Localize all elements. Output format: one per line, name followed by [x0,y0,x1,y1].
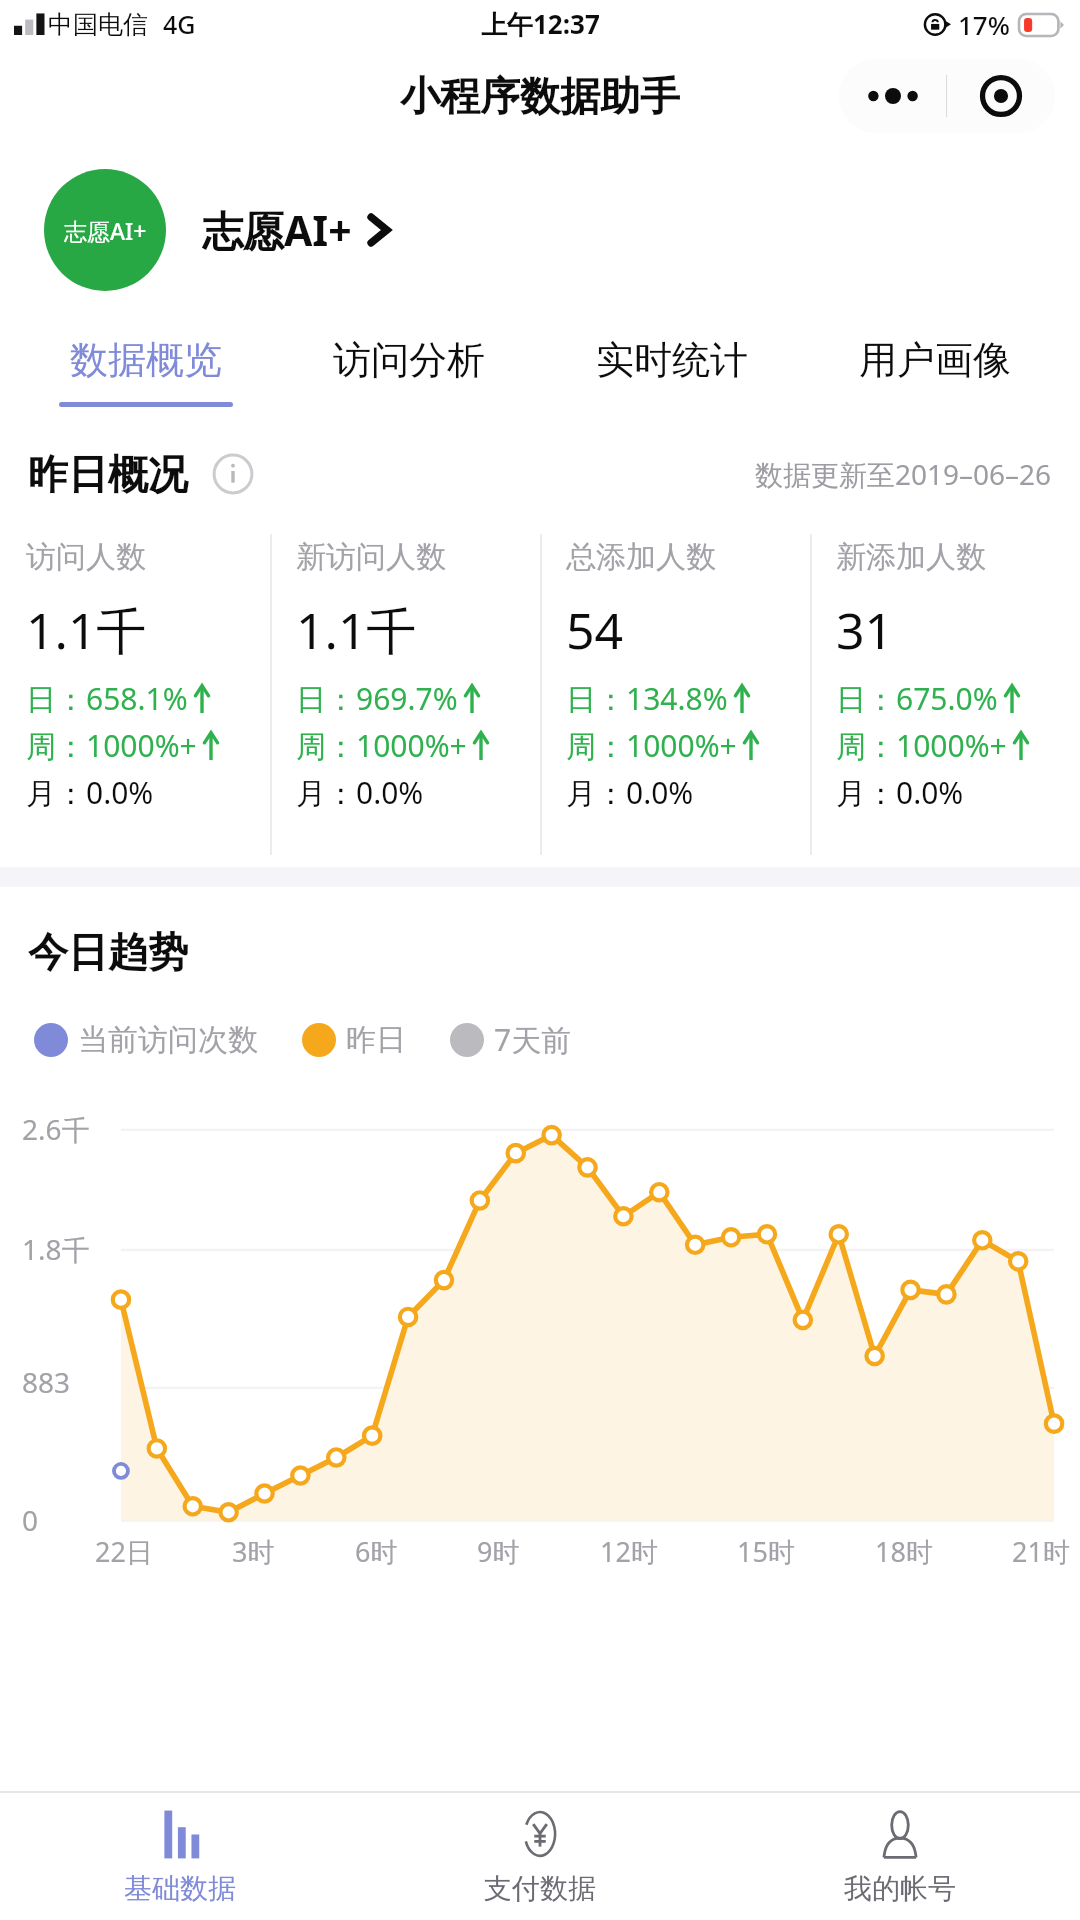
staticText: 今日趋势 [28,927,188,977]
staticText: 22日 [95,1533,153,1570]
staticText: 数据概览 [70,336,222,384]
button[interactable]: 当前访问次数 [34,1021,258,1059]
staticText: 昨日概况 [28,449,188,499]
button[interactable]: Info [212,453,254,495]
button[interactable]: 志愿AI+ [0,144,1080,316]
staticText: 7天前 [494,1019,572,1060]
staticText: 访问人数 [26,538,146,576]
staticText: 志愿AI+ [202,202,352,258]
staticText: 31 [836,596,894,664]
staticText: 883 [22,1363,71,1401]
staticText: 实时统计 [596,336,748,384]
staticText: 日：969.7% [296,678,458,719]
staticText: 总添加人数 [566,538,716,576]
button[interactable]: 访问分析 [277,316,540,426]
button[interactable]: 实时统计 [540,316,803,426]
staticText: 支付数据 [484,1871,596,1906]
staticText: 我的帐号 [844,1871,956,1906]
staticText: 12时 [600,1533,658,1570]
staticText: 15时 [737,1533,795,1570]
button[interactable]: Close mini program [947,59,1055,133]
staticText: 1.1千 [296,596,417,664]
staticText: 周：1000%+ [836,725,1007,766]
staticText: 周：1000%+ [26,725,197,766]
button[interactable]: 我的帐号 [720,1793,1080,1920]
staticText: 21时 [1012,1533,1070,1570]
button[interactable]: 昨日 [302,1021,406,1059]
staticText: 54 [566,596,624,664]
staticText: 基础数据 [124,1871,236,1906]
staticText: 月：0.0% [26,772,154,813]
staticText: 0 [22,1501,39,1539]
staticText: 小程序数据助手 [400,71,680,121]
staticText: 9时 [477,1533,520,1570]
staticText: 周：1000%+ [566,725,737,766]
button[interactable]: 数据概览 [14,316,277,426]
staticText: 志愿AI+ [64,215,147,246]
staticText: 18时 [875,1533,933,1570]
staticText: 月：0.0% [566,772,694,813]
staticText: 周：1000%+ [296,725,467,766]
button[interactable]: 7天前 [450,1019,572,1060]
staticText: 17% [958,7,1010,42]
staticText: 月：0.0% [836,772,964,813]
staticText: 4G [163,7,196,41]
button[interactable]: More options [839,59,946,133]
button[interactable]: 基础数据 [0,1793,360,1920]
staticText: 2.6千 [22,1110,90,1148]
staticText: 日：134.8% [566,678,728,719]
staticText: 日：658.1% [26,678,188,719]
staticText: 当前访问次数 [78,1021,258,1059]
staticText: 新添加人数 [836,538,986,576]
staticText: 中国电信 [48,9,148,40]
staticText: 6时 [355,1533,398,1570]
staticText: 1.8千 [22,1230,90,1268]
button[interactable]: 支付数据 [360,1793,720,1920]
staticText: 数据更新至2019–06–26 [755,455,1052,493]
staticText: 3时 [232,1533,275,1570]
staticText: 新访问人数 [296,538,446,576]
staticText: 上午12:37 [481,6,600,42]
staticText: 1.1千 [26,596,147,664]
staticText: 用户画像 [859,336,1011,384]
button[interactable]: 用户画像 [803,316,1066,426]
staticText: 访问分析 [333,336,485,384]
staticText: 月：0.0% [296,772,424,813]
staticText: 昨日 [346,1021,406,1059]
staticText: 日：675.0% [836,678,998,719]
